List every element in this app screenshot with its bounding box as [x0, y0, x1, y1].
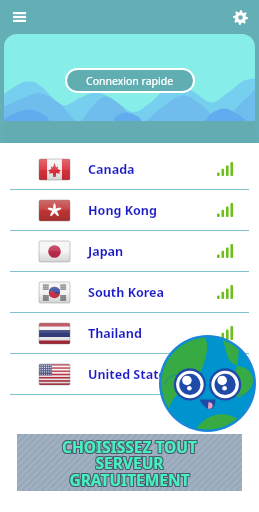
staticText: CHOISISSEZ TOUT SERVEUR GRATUITEMENT — [62, 437, 197, 491]
staticText: South Korea — [88, 284, 165, 301]
staticText: Canada — [88, 161, 135, 178]
staticText: Connexion rapide — [86, 74, 174, 88]
button[interactable]: Menu — [6, 4, 32, 30]
button[interactable]: South Korea — [0, 272, 259, 312]
staticText: United States — [88, 366, 173, 383]
button[interactable]: Thailand — [0, 313, 259, 353]
staticText: CHOISISSEZ TOUT SERVEUR GRATUITEMENT — [61, 437, 196, 491]
button[interactable]: Japan — [0, 231, 259, 271]
staticText: CHOISISSEZ TOUT SERVEUR GRATUITEMENT — [61, 435, 196, 489]
staticText: CHOISISSEZ TOUT SERVEUR GRATUITEMENT — [62, 436, 197, 490]
button[interactable]: Settings — [227, 4, 253, 30]
button[interactable]: United States — [0, 354, 259, 394]
staticText: CHOISISSEZ TOUT SERVEUR GRATUITEMENT — [63, 436, 198, 490]
button[interactable]: Connexion rapide — [67, 70, 193, 91]
button[interactable]: Hong Kong — [0, 190, 259, 230]
staticText: CHOISISSEZ TOUT SERVEUR GRATUITEMENT — [63, 437, 198, 491]
button[interactable]: Canada — [0, 149, 259, 189]
staticText: CHOISISSEZ TOUT SERVEUR GRATUITEMENT — [61, 436, 196, 490]
staticText: Thailand — [88, 325, 142, 342]
staticText: Hong Kong — [88, 202, 157, 219]
staticText: CHOISISSEZ TOUT SERVEUR GRATUITEMENT — [63, 435, 198, 489]
staticText: CHOISISSEZ TOUT SERVEUR GRATUITEMENT — [62, 435, 197, 489]
staticText: Japan — [88, 243, 124, 260]
